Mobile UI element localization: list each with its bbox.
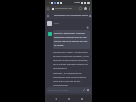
button[interactable]: Attach file bbox=[83, 89, 85, 91]
staticText: Vous bbox=[54, 22, 59, 25]
staticText: Maitrisez , je comprends les motivations… bbox=[53, 72, 89, 87]
button[interactable]: Recents bbox=[79, 96, 84, 101]
staticText: 10:58 bbox=[74, 1, 80, 4]
staticText: Sounds like I called - at vue travail de… bbox=[53, 51, 89, 70]
button[interactable]: Copy bbox=[87, 27, 89, 29]
button[interactable]: Home bbox=[66, 96, 71, 101]
staticText: chat.openai.com bbox=[55, 7, 73, 10]
button[interactable]: Menu bbox=[46, 14, 49, 17]
staticText: Bonjour ! Bienvenue. Soumise clairement … bbox=[54, 32, 89, 47]
button[interactable]: Account bbox=[46, 7, 50, 11]
button[interactable]: Close bbox=[88, 14, 91, 17]
staticText: Envoyer un message bbox=[48, 89, 69, 92]
button[interactable]: Reload bbox=[79, 7, 82, 10]
button[interactable]: Back bbox=[53, 96, 58, 101]
button[interactable]: Envoyer un message bbox=[46, 87, 91, 93]
button[interactable]: Send bbox=[87, 89, 89, 91]
button[interactable]: chat.openai.com bbox=[51, 6, 83, 11]
button[interactable]: Tabs bbox=[84, 7, 87, 10]
button[interactable]: More options bbox=[88, 6, 91, 12]
staticText: Generateur de Commande Vente bbox=[54, 14, 88, 17]
